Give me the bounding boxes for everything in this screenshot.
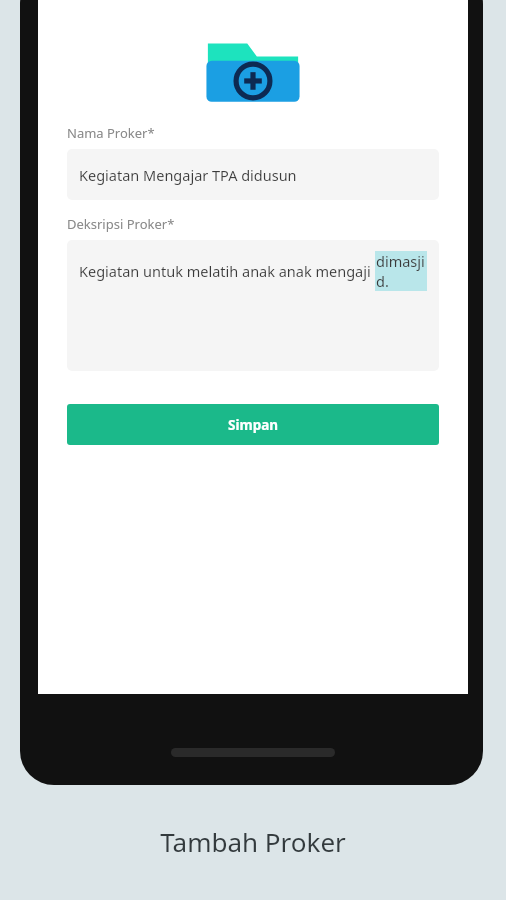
staticText: Nama Proker* (67, 124, 155, 142)
staticText: Kegiatan Mengajar TPA didusun (79, 165, 297, 185)
staticText: Tambah Proker (160, 824, 346, 859)
staticText: Deksripsi Proker* (67, 215, 175, 233)
staticText: dimasjid. (376, 251, 426, 291)
staticText: Simpan (228, 416, 279, 434)
button[interactable]: Kegiatan Mengajar TPA didusun (67, 149, 439, 200)
other: Add folder (205, 32, 301, 104)
staticText: Kegiatan untuk melatih anak anak mengaji (79, 261, 375, 281)
button[interactable]: Kegiatan untuk melatih anak anak mengaji (67, 240, 439, 371)
button[interactable]: Simpan (67, 404, 439, 445)
